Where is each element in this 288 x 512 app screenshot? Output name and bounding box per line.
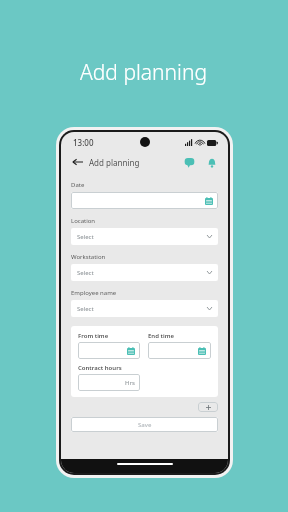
button[interactable]: Hrs: [78, 374, 140, 391]
button[interactable]: [78, 342, 140, 359]
staticText: Select: [77, 305, 94, 313]
button[interactable]: Select: [71, 264, 218, 281]
button[interactable]: Add shift: [198, 402, 218, 412]
button[interactable]: [71, 192, 218, 209]
staticText: Add planning: [89, 157, 140, 168]
staticText: Date: [71, 181, 85, 189]
staticText: Workstation: [71, 253, 106, 261]
staticText: Select: [77, 269, 94, 277]
staticText: Location: [71, 217, 96, 225]
staticText: End time: [148, 332, 174, 340]
button[interactable]: Notifications: [204, 155, 219, 170]
staticText: From time: [78, 332, 109, 340]
staticText: 13:00: [73, 137, 94, 148]
button[interactable]: Save: [71, 417, 218, 432]
staticText: Add planning: [80, 58, 208, 87]
button[interactable]: Back: [70, 155, 84, 169]
staticText: Employee name: [71, 289, 117, 297]
button[interactable]: Select: [71, 228, 218, 245]
button[interactable]: Select: [71, 300, 218, 317]
staticText: Contract hours: [78, 364, 122, 372]
button[interactable]: Messages: [182, 155, 197, 170]
staticText: Select: [77, 233, 94, 241]
staticText: Save: [138, 421, 152, 429]
staticText: Hrs: [125, 379, 135, 387]
button[interactable]: [148, 342, 211, 359]
